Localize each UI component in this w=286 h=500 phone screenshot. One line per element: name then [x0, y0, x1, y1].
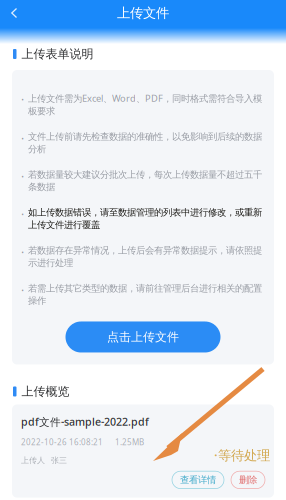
staticText: · — [21, 283, 24, 298]
staticText: · — [21, 131, 24, 147]
staticText: 若数据存在异常情况，上传后会有异常数据提示，请依照提示进行处理 — [28, 245, 262, 268]
button[interactable]: 删除 — [231, 471, 265, 489]
staticText: 张三 — [51, 455, 67, 465]
button[interactable]: 查看详情 — [172, 471, 224, 489]
staticText: 查看详情 — [180, 474, 216, 486]
staticText: 如上传数据错误，请至数据管理的列表中进行修改，或重新上传文件进行覆盖 — [28, 207, 262, 231]
staticText: 上传文件需为Excel、Word、PDF，同时格式需符合导入模板要求 — [28, 92, 262, 117]
staticText: pdf文件-sample-2022.pdf — [21, 414, 149, 429]
staticText: · — [21, 245, 24, 260]
staticText: 删除 — [239, 474, 257, 486]
staticText: 上传概览 — [21, 384, 69, 399]
staticText: 文件上传前请先检查数据的准确性，以免影响到后续的数据分析 — [28, 131, 262, 155]
staticText: · — [21, 169, 24, 185]
staticText: · — [21, 207, 24, 223]
staticText: 若需上传其它类型的数据，请前往管理后台进行相关的配置操作 — [28, 283, 262, 306]
button[interactable]: 返回 — [0, 0, 28, 26]
staticText: 1.25MB — [115, 437, 144, 447]
staticText: 若数据量较大建议分批次上传，每次上传数据量不超过五千条数据 — [28, 169, 262, 193]
staticText: 上传表单说明 — [21, 47, 93, 61]
staticText: · — [21, 92, 24, 108]
staticText: 点击上传文件 — [107, 330, 179, 344]
staticText: 上传文件 — [117, 5, 169, 21]
staticText: 2022-10-26 16:08:21 — [21, 437, 103, 447]
staticText: 上传人 — [21, 455, 45, 465]
staticText: ·等待处理 — [214, 446, 270, 464]
button[interactable]: 点击上传文件 — [65, 321, 220, 352]
